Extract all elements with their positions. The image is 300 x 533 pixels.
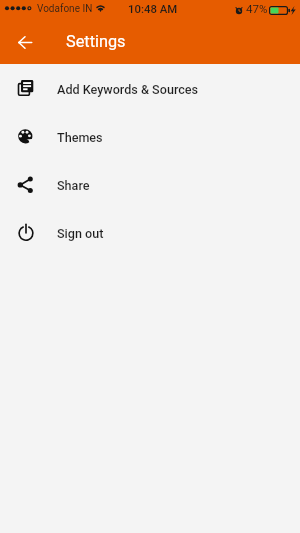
staticText: 10:48 AM: [128, 2, 178, 15]
button[interactable]: Add Keywords & Sources: [0, 64, 300, 112]
button[interactable]: Themes: [0, 112, 300, 160]
staticText: Add Keywords & Sources: [57, 82, 199, 97]
staticText: Settings: [66, 32, 126, 51]
staticText: 47%: [246, 2, 268, 16]
staticText: Sign out: [57, 226, 104, 241]
button[interactable]: Back: [11, 28, 39, 56]
button[interactable]: Share: [0, 160, 300, 208]
button[interactable]: Sign out: [0, 208, 300, 256]
staticText: Themes: [57, 130, 103, 145]
staticText: Share: [57, 178, 90, 193]
staticText: Vodafone IN: [37, 3, 93, 15]
